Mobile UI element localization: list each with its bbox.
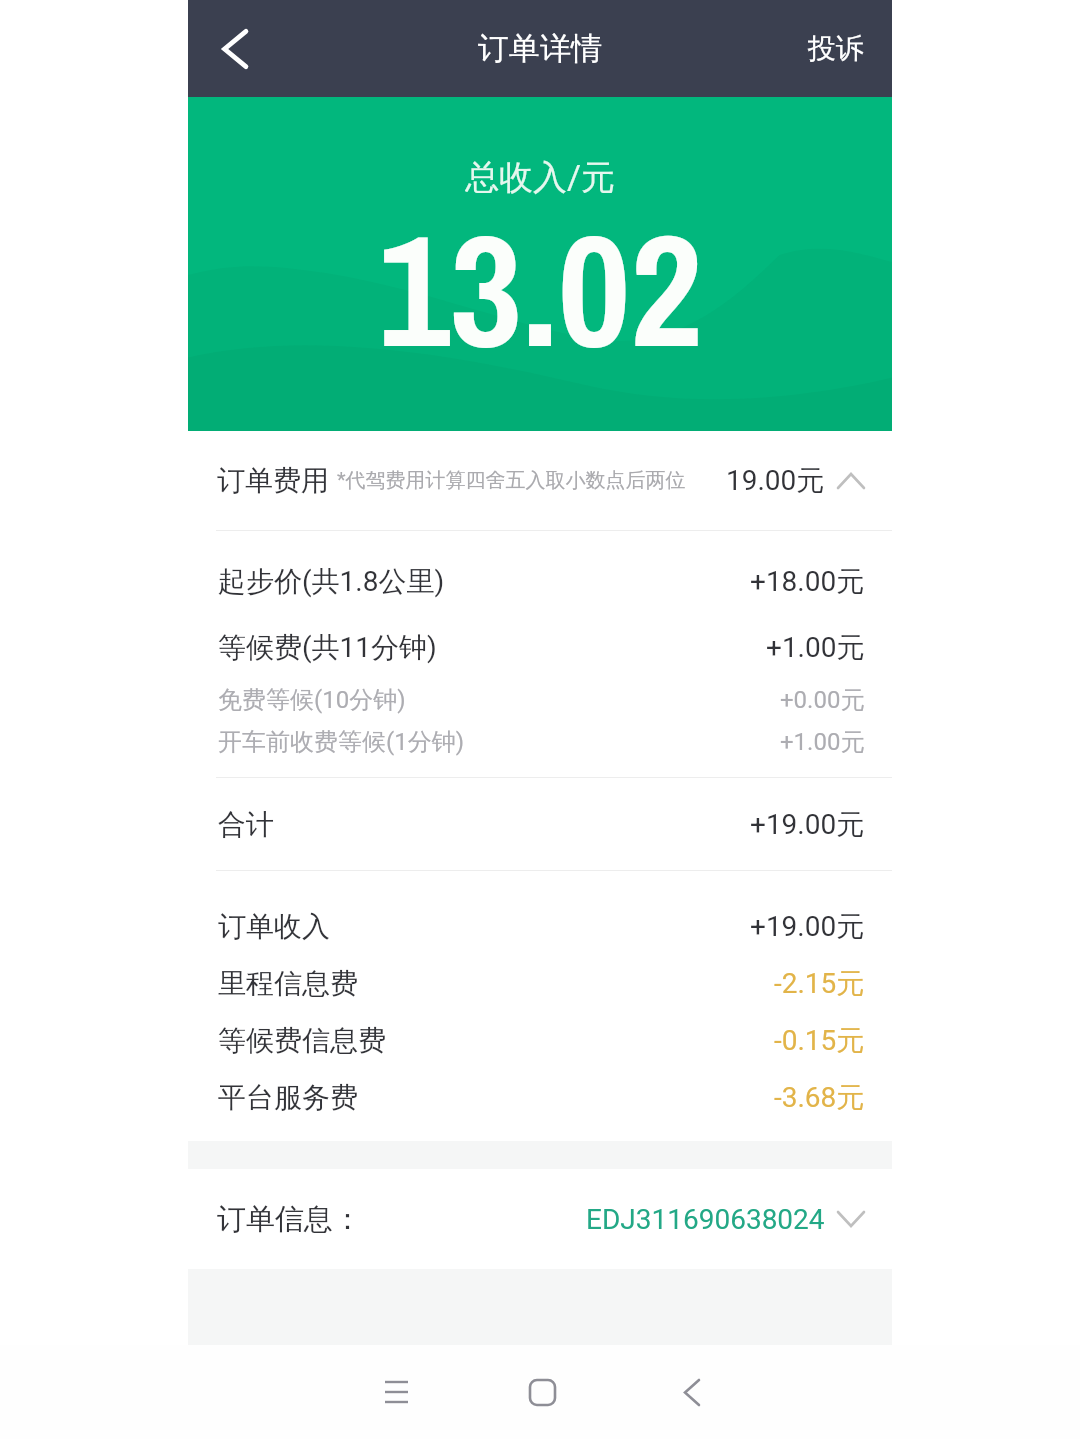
staticText: -0.15元 <box>774 1023 865 1058</box>
staticText: 订单详情 <box>478 29 602 68</box>
staticText: +19.00元 <box>750 909 865 944</box>
staticText: 开车前收费等候(1分钟) <box>218 727 465 757</box>
staticText: 订单信息： <box>217 1201 362 1238</box>
staticText: 订单费用 <box>217 463 329 498</box>
staticText: 13.02 <box>378 182 703 395</box>
staticText: 起步价(共1.8公里) <box>218 564 445 599</box>
staticText: +18.00元 <box>750 564 865 599</box>
button[interactable]: Back <box>655 1345 728 1439</box>
staticText: +1.00元 <box>780 727 865 757</box>
staticText: 合计 <box>218 807 274 842</box>
staticText: 里程信息费 <box>218 966 358 1001</box>
button[interactable]: 订单信息： <box>188 1169 892 1269</box>
staticText: +0.00元 <box>780 685 865 715</box>
staticText: EDJ311690638024 <box>586 1203 825 1236</box>
staticText: 总收入/元 <box>465 156 616 199</box>
staticText: 免费等候(10分钟) <box>218 685 406 715</box>
staticText: 投诉 <box>808 31 864 66</box>
staticText: 订单收入 <box>218 909 330 944</box>
button[interactable]: Recent apps <box>360 1345 433 1439</box>
staticText: +19.00元 <box>750 807 865 842</box>
staticText: 平台服务费 <box>218 1080 358 1115</box>
staticText: 等候费(共11分钟) <box>218 630 437 665</box>
staticText: 19.00元 <box>726 463 825 498</box>
button[interactable]: 订单费用 <box>188 431 892 530</box>
button[interactable]: Back <box>188 0 282 97</box>
button[interactable]: 投诉 <box>778 0 892 97</box>
staticText: +1.00元 <box>766 630 865 665</box>
staticText: -2.15元 <box>774 966 865 1001</box>
staticText: -3.68元 <box>774 1080 865 1115</box>
button[interactable]: Home <box>506 1345 579 1439</box>
staticText: 等候费信息费 <box>218 1023 386 1058</box>
staticText: *代驾费用计算四舍五入取小数点后两位 <box>337 468 686 493</box>
